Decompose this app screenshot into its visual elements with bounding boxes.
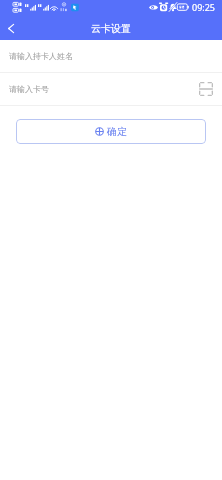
staticText: 请输入卡号 [9,84,49,94]
staticText: 确定 [107,125,127,138]
button[interactable]: Scan card number [199,79,213,99]
button[interactable]: Back [0,14,22,40]
button[interactable]: 请输入卡号 [0,73,222,105]
staticText: 请输入持卡人姓名 [9,51,73,61]
staticText: 云卡设置 [91,22,131,35]
staticText: 09:25 [192,1,216,13]
button[interactable]: 确定 [16,119,206,144]
button[interactable]: 请输入持卡人姓名 [0,40,222,72]
